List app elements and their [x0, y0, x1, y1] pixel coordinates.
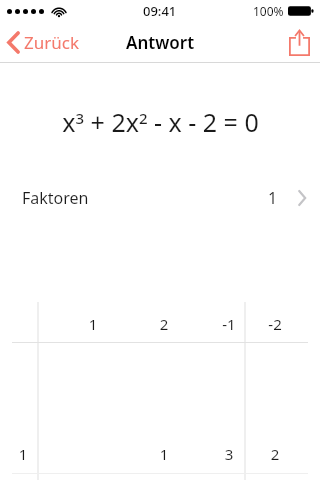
staticText: Antwort	[126, 31, 195, 54]
staticText: 09:41	[143, 2, 177, 20]
staticText: 2	[258, 444, 292, 464]
staticText: 3	[212, 444, 246, 464]
staticText: 1	[268, 187, 278, 209]
staticText: -1	[212, 314, 246, 334]
staticText: 1	[8, 444, 38, 464]
staticText: x3 + 2x2 - x - 2 = 0	[62, 105, 259, 139]
staticText: 1	[147, 444, 181, 464]
button[interactable]: Zurück	[0, 27, 89, 58]
button[interactable]: Teilen	[279, 26, 320, 59]
staticText: 1	[76, 314, 110, 334]
staticText: Faktoren	[22, 187, 89, 209]
staticText: 2	[147, 314, 181, 334]
staticText: -2	[258, 314, 292, 334]
staticText: Zurück	[24, 31, 79, 54]
staticText: 100%	[253, 3, 284, 19]
button[interactable]: Faktoren	[0, 181, 320, 215]
